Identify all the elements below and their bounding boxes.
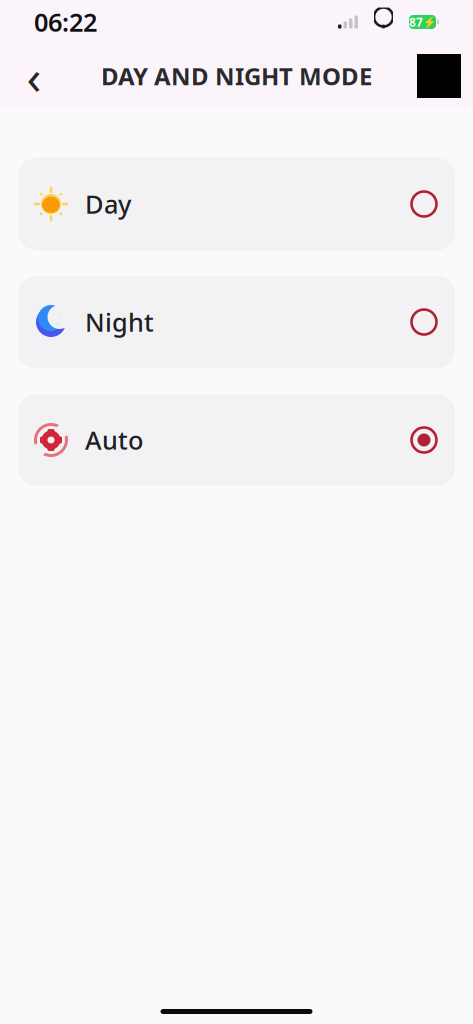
staticText: 06:22 (34, 5, 97, 39)
staticText: ⚡ (423, 16, 436, 28)
staticText: ✦ (57, 311, 64, 320)
staticText: ‹ (26, 44, 41, 108)
button[interactable]: ✦ (18, 276, 455, 368)
staticText: Day (85, 187, 131, 221)
staticText: Auto (85, 423, 143, 457)
button[interactable]: Back (12, 54, 56, 98)
staticText: Night (85, 305, 154, 339)
staticText: ✦ (51, 316, 62, 331)
button[interactable]: Auto (18, 394, 455, 486)
button[interactable]: Day (18, 158, 455, 250)
staticText: 87 (409, 14, 423, 30)
staticText: DAY AND NIGHT MODE (101, 60, 372, 92)
